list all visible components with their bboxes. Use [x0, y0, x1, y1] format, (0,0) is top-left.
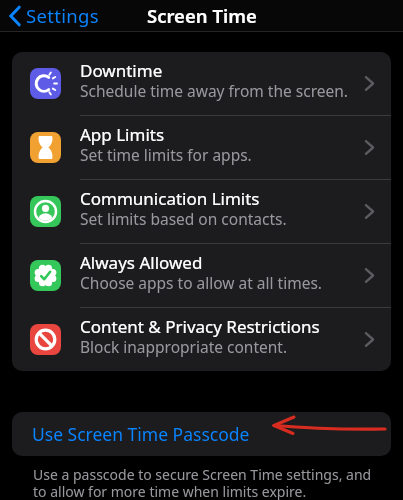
staticText: Choose apps to allow at all times. — [80, 272, 322, 293]
button[interactable]: Content & Privacy Restrictions — [12, 308, 391, 371]
button[interactable]: Settings — [9, 3, 99, 28]
button[interactable]: Use Screen Time Passcode — [12, 412, 391, 456]
button[interactable]: Communication Limits — [12, 180, 391, 243]
staticText: Always Allowed — [80, 251, 203, 274]
staticText: Schedule time away from the screen. — [80, 80, 348, 101]
staticText: Set limits based on contacts. — [80, 208, 287, 229]
staticText: Downtime — [80, 59, 163, 82]
staticText: Screen Time — [147, 3, 257, 28]
staticText: Use a passcode to secure Screen Time set… — [33, 465, 372, 500]
staticText: App Limits — [80, 123, 165, 146]
staticText: Block inappropriate content. — [80, 336, 288, 357]
button[interactable]: App Limits — [12, 116, 391, 179]
staticText: Content & Privacy Restrictions — [80, 315, 320, 338]
staticText: Use Screen Time Passcode — [32, 422, 250, 446]
staticText: Communication Limits — [80, 187, 260, 210]
button[interactable]: Downtime — [12, 52, 391, 115]
button[interactable]: Always Allowed — [12, 244, 391, 307]
staticText: Settings — [26, 3, 99, 28]
staticText: Set time limits for apps. — [80, 144, 252, 165]
